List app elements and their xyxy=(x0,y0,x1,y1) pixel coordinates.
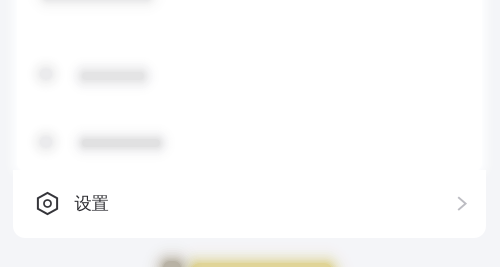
button[interactable]: 设置 xyxy=(13,170,486,238)
staticText: 设置 xyxy=(75,193,109,214)
